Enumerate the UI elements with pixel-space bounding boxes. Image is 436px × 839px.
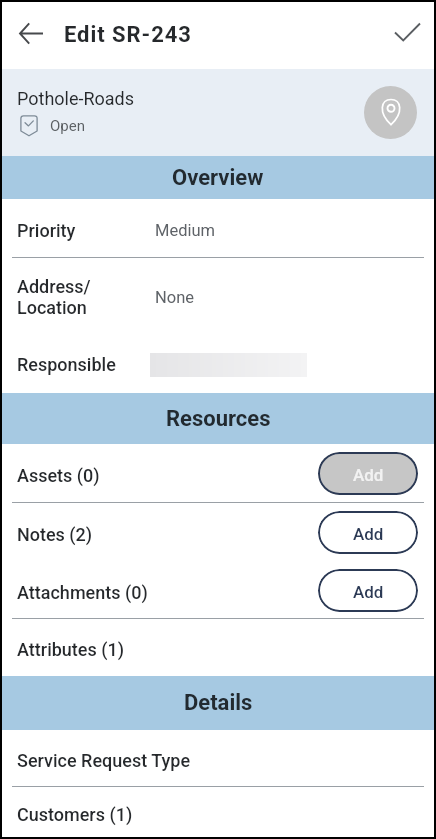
staticText: Add: [353, 524, 384, 544]
button[interactable]: Assets (0): [2, 444, 434, 503]
staticText: None: [155, 288, 195, 307]
staticText: Priority: [17, 220, 76, 241]
button[interactable]: Responsible: [2, 332, 434, 393]
button[interactable]: Add: [318, 511, 418, 554]
button[interactable]: Add: [318, 569, 418, 612]
button[interactable]: Show on map: [364, 86, 417, 139]
staticText: Notes (2): [17, 524, 93, 545]
button[interactable]: Add: [318, 452, 418, 495]
staticText: Details: [184, 690, 253, 716]
staticText: Customers (1): [17, 804, 133, 825]
staticText: Attributes (1): [17, 639, 124, 660]
staticText: Add: [353, 582, 384, 602]
button[interactable]: Save: [382, 7, 434, 59]
staticText: Open: [50, 117, 85, 135]
staticText: Attachments (0): [17, 582, 148, 603]
staticText: Responsible: [17, 354, 116, 375]
button[interactable]: Attributes (1): [2, 619, 434, 676]
button[interactable]: Back: [2, 7, 54, 59]
staticText: Pothole-Roads: [17, 88, 135, 109]
button[interactable]: Service Request Type: [2, 730, 434, 787]
button[interactable]: Priority: [2, 199, 434, 258]
staticText: Resources: [166, 406, 271, 432]
staticText: Edit SR-243: [64, 22, 192, 48]
staticText: Address/ Location: [17, 276, 91, 318]
staticText: Assets (0): [17, 465, 100, 486]
button[interactable]: Pothole-Roads: [2, 69, 434, 156]
staticText: Overview: [172, 165, 264, 191]
staticText: Service Request Type: [17, 750, 191, 771]
button[interactable]: Attachments (0): [2, 561, 434, 619]
button[interactable]: Notes (2): [2, 503, 434, 561]
staticText: Medium: [155, 221, 216, 240]
staticText: Add: [353, 465, 384, 485]
button[interactable]: Customers (1): [2, 787, 434, 837]
button[interactable]: Address/ Location: [2, 258, 434, 332]
